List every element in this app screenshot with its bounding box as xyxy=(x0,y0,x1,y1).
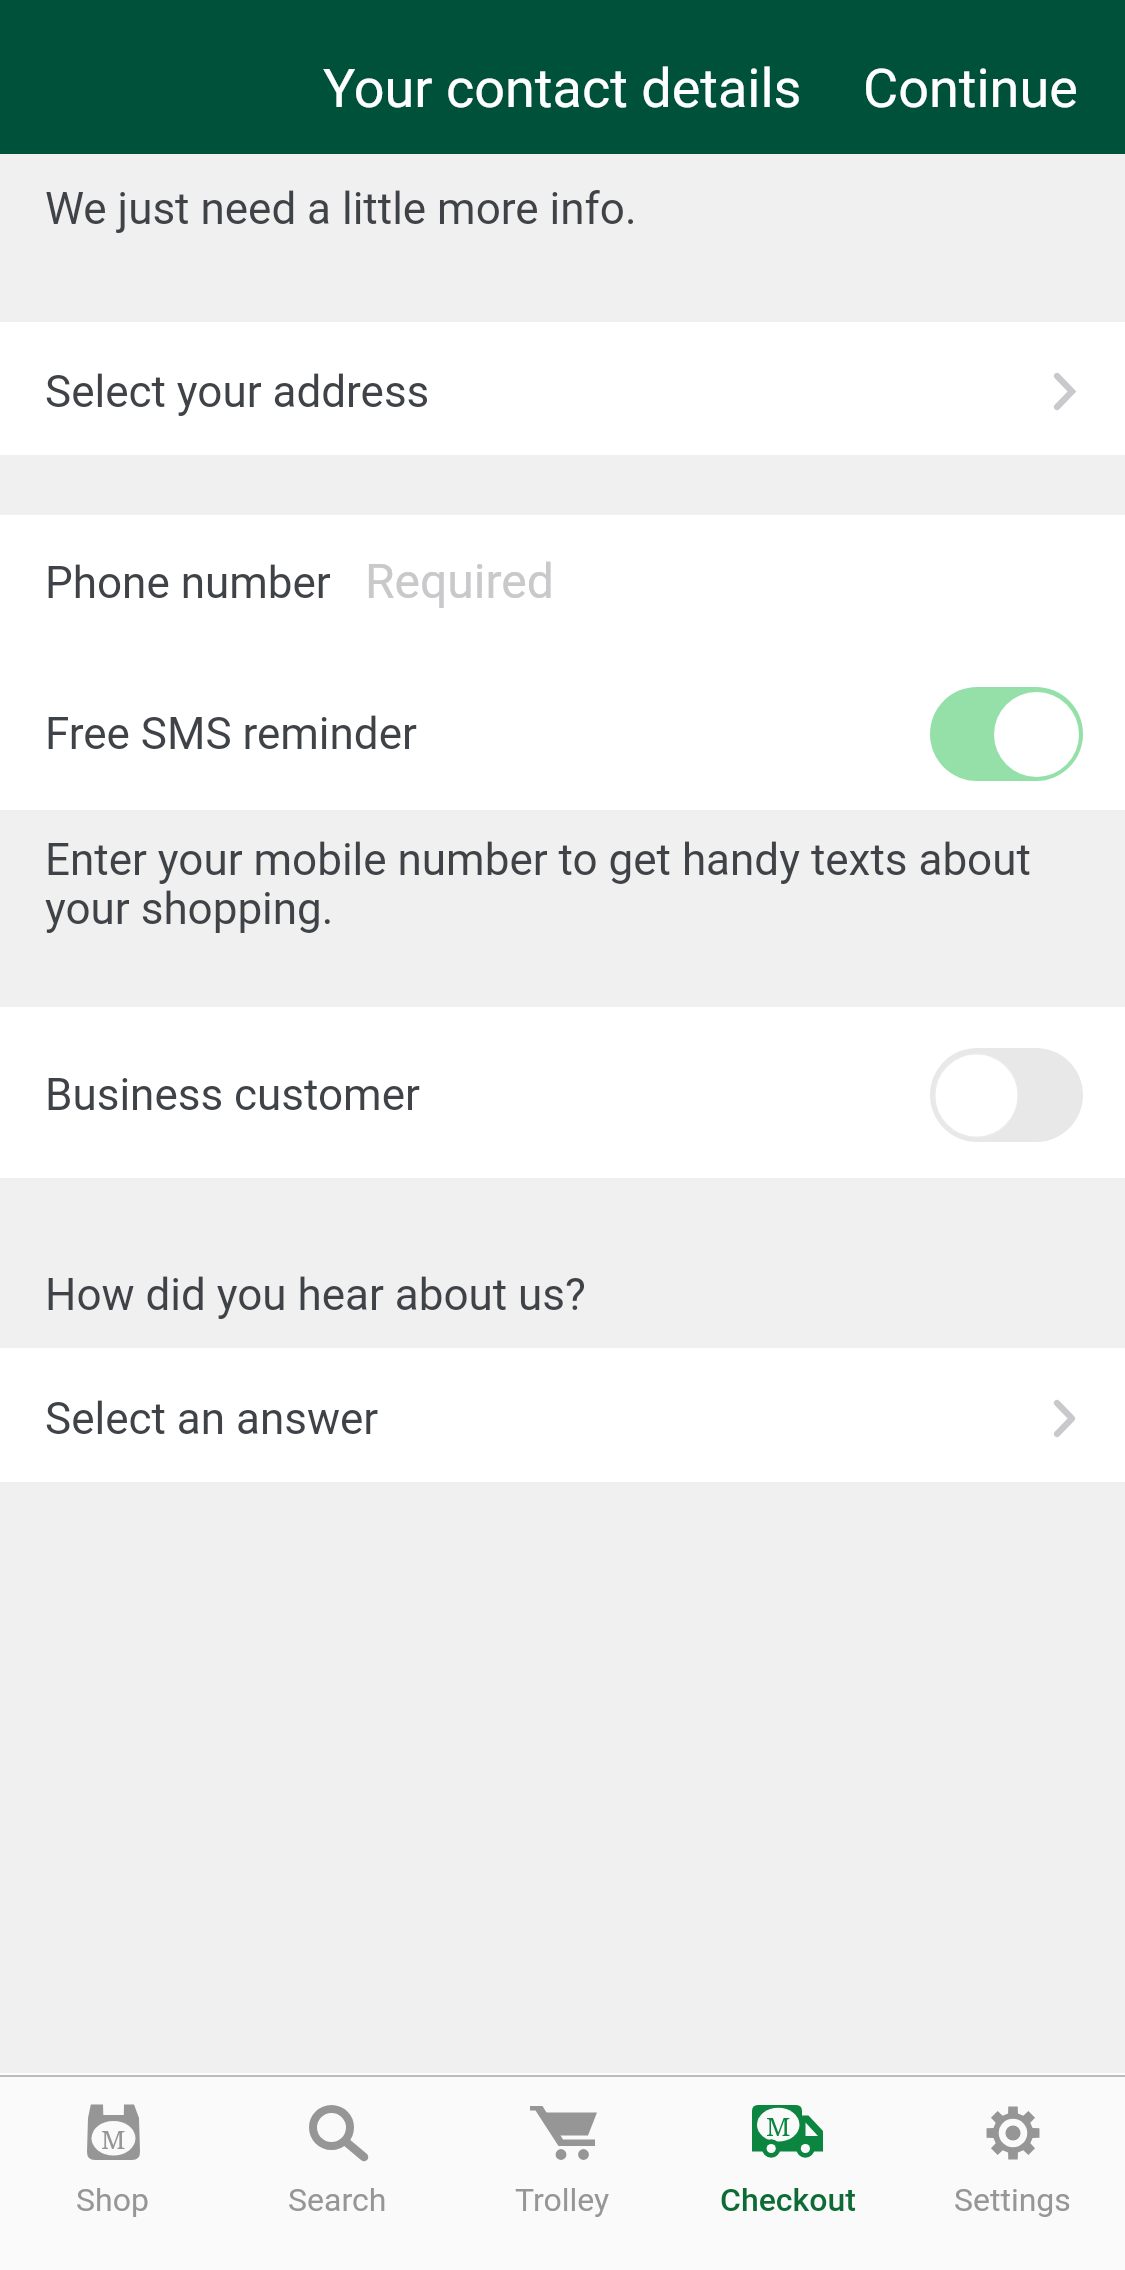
staticText: Trolley xyxy=(515,2181,610,2219)
staticText: Select your address xyxy=(45,366,430,418)
staticText: Your contact details xyxy=(323,57,802,120)
button[interactable]: Checkout xyxy=(675,2077,900,2270)
button[interactable]: Select your address xyxy=(0,322,1125,455)
staticText: Free SMS reminder xyxy=(45,708,417,760)
button[interactable]: Business customer xyxy=(0,1007,1125,1178)
button[interactable]: Continue xyxy=(839,47,1102,130)
button[interactable]: Select an answer xyxy=(0,1348,1125,1482)
staticText: Continue xyxy=(863,57,1078,120)
staticText: M xyxy=(766,2108,791,2142)
button[interactable]: Settings xyxy=(900,2077,1125,2270)
staticText: Enter your mobile number to get handy te… xyxy=(45,834,1060,935)
staticText: Required xyxy=(365,553,554,609)
staticText: Phone number xyxy=(45,557,331,609)
staticText: Search xyxy=(288,2181,387,2219)
button[interactable]: Phone number xyxy=(0,515,1125,648)
staticText: How did you hear about us? xyxy=(45,1269,586,1321)
staticText: Shop xyxy=(76,2181,149,2219)
staticText: We just need a little more info. xyxy=(45,183,637,235)
staticText: Checkout xyxy=(720,2181,856,2219)
button[interactable]: Shop xyxy=(0,2077,225,2270)
staticText: Select an answer xyxy=(45,1393,379,1445)
button[interactable]: Free SMS reminder xyxy=(0,648,1125,810)
button[interactable]: Search xyxy=(225,2077,450,2270)
staticText: M xyxy=(101,2121,126,2156)
button[interactable]: Free SMS reminder toggle xyxy=(930,687,1083,781)
staticText: Business customer xyxy=(45,1069,420,1121)
button[interactable]: Trolley xyxy=(450,2077,675,2270)
button[interactable]: Business customer toggle xyxy=(930,1048,1083,1142)
staticText: Settings xyxy=(954,2181,1071,2219)
